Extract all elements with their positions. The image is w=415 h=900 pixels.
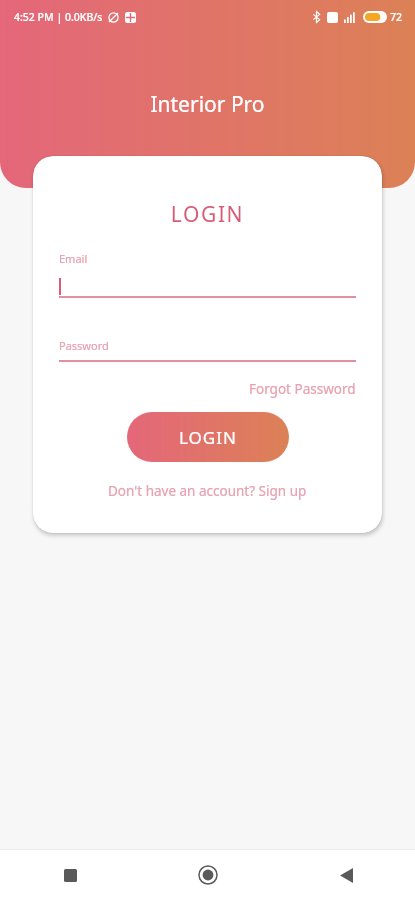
button[interactable]: Forgot Password	[245, 376, 360, 402]
staticText: Interior Pro	[150, 90, 265, 119]
button[interactable]: Email	[59, 251, 356, 298]
button[interactable]: Password	[59, 338, 356, 362]
staticText: LOGIN	[33, 200, 382, 229]
staticText: LOGIN	[179, 426, 237, 449]
staticText: 4:52 PM | 0.0KB/s	[14, 10, 103, 24]
staticText: Email	[59, 251, 88, 266]
staticText: Password	[59, 338, 109, 353]
staticText: 72	[390, 10, 403, 24]
button[interactable]: Back	[322, 851, 370, 899]
button[interactable]: LOGIN	[127, 412, 289, 462]
button[interactable]: Recents	[46, 851, 94, 899]
button[interactable]: Home	[184, 851, 232, 899]
button[interactable]: Don't have an account? Sign up	[104, 478, 311, 504]
